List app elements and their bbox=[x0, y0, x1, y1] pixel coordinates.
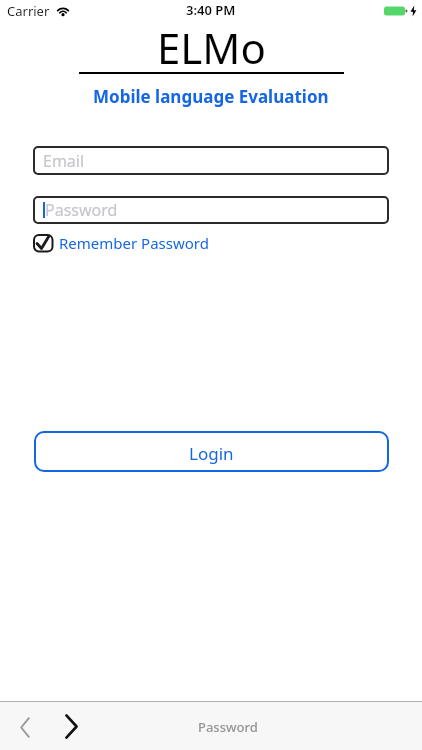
staticText: Login bbox=[189, 442, 234, 465]
staticText: Password bbox=[45, 199, 118, 221]
button[interactable]: Password bbox=[33, 196, 389, 224]
button[interactable]: Remember Password bbox=[33, 232, 209, 253]
staticText: Carrier bbox=[7, 2, 50, 20]
staticText: Password bbox=[198, 718, 258, 736]
button[interactable] bbox=[20, 717, 30, 738]
staticText: Mobile language Evaluation bbox=[93, 85, 329, 108]
staticText: 3:40 PM bbox=[186, 1, 236, 19]
staticText: ELMo bbox=[157, 19, 266, 76]
button[interactable]: Login bbox=[34, 431, 389, 472]
staticText: Email bbox=[43, 150, 85, 172]
button[interactable] bbox=[65, 714, 78, 739]
button[interactable]: Email bbox=[33, 146, 389, 175]
staticText: Remember Password bbox=[59, 233, 209, 253]
